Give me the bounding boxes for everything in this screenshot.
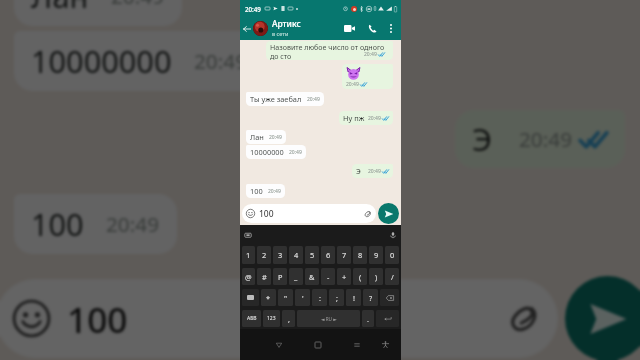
button[interactable]: " [278,289,293,306]
button[interactable]: Profile photo [253,21,268,36]
button[interactable]: Home [312,339,323,350]
staticText: 10000000 [250,147,284,157]
button[interactable]: Ты уже заебал [250,94,320,104]
button[interactable]: Back [240,22,253,35]
button[interactable] [380,289,399,306]
button[interactable]: 8 [353,246,367,264]
button[interactable]: : [312,289,327,306]
button[interactable]: ! [346,289,361,306]
button[interactable]: 10000000 [31,40,248,82]
button[interactable]: Лан [250,132,282,142]
staticText: 100 [250,186,263,196]
button[interactable]: 123 [263,310,280,327]
button[interactable]: ? [363,289,378,306]
button[interactable]: Send [378,203,399,224]
button[interactable]: 9 [369,246,383,264]
button[interactable]: ) [369,268,383,285]
button[interactable]: , [282,310,295,327]
staticText: 20:49 [289,149,302,156]
staticText: 1 [246,250,251,260]
staticText: / [391,272,394,282]
button[interactable]: Voice input [389,231,397,239]
button[interactable]: Clipboard [244,231,252,239]
staticText: Лан [250,132,264,142]
staticText: ! [353,293,355,303]
staticText: ' [302,293,304,303]
button[interactable]: Лан [31,0,165,17]
staticText: 20:49 [106,210,160,238]
staticText: 3 [278,250,283,260]
staticText: 20:49 [268,188,281,195]
staticText: ? [369,293,373,303]
staticText: 9 [374,250,379,260]
staticText: 20:49 [364,51,377,58]
button[interactable]: 20:49 [346,66,389,88]
button[interactable]: Voice call [364,20,380,36]
staticText: ) [375,272,378,282]
staticText: Э [356,166,361,176]
button[interactable]: # [257,268,271,285]
button[interactable]: 3 [273,246,287,264]
button[interactable]: Назовите любое число от одного [270,43,389,59]
staticText: - [327,272,330,282]
button[interactable]: ( [353,268,367,285]
staticText: , [288,314,290,324]
button[interactable]: 100 [246,204,372,223]
staticText: : [319,293,321,303]
button[interactable]: ' [295,289,310,306]
button[interactable]: Send [565,276,640,360]
staticText: 20:49 [368,115,381,122]
button[interactable]: @ [242,268,255,285]
button[interactable]: _ [289,268,303,285]
button[interactable]: Accessibility [380,339,391,350]
staticText: 6 [326,250,331,260]
staticText: в сети [272,30,289,38]
button[interactable]: 6 [321,246,335,264]
button[interactable] [242,289,259,306]
staticText: ; [336,293,338,303]
button[interactable]: ◄ RU ► [297,310,360,327]
staticText: 123 [267,315,276,322]
button[interactable]: 2 [257,246,271,264]
staticText: 4 [294,250,299,260]
button[interactable]: 100 [250,186,281,196]
staticText: 100 [31,203,84,245]
staticText: " [284,293,288,303]
button[interactable]: Э [472,118,608,160]
staticText: 20:49 [269,134,282,141]
button[interactable]: Recents [351,339,362,350]
button[interactable]: ; [329,289,344,306]
button[interactable]: * [261,289,276,306]
staticText: Лан [31,0,89,17]
button[interactable]: / [385,268,399,285]
staticText: до сто [270,51,292,60]
staticText: 8 [358,250,363,260]
button[interactable]: Back [273,339,284,350]
button[interactable]: Ну пж [343,113,389,123]
staticText: Артикс [272,18,301,29]
button[interactable]: Э [356,166,389,176]
button[interactable]: 1 [242,246,255,264]
button[interactable]: 7 [337,246,351,264]
button[interactable]: & [305,268,319,285]
staticText: . [367,314,369,324]
staticText: Э [472,118,492,160]
button[interactable]: + [337,268,351,285]
button[interactable] [376,310,399,327]
button[interactable]: - [321,268,335,285]
button[interactable]: 100 [31,203,160,245]
button[interactable]: 4 [289,246,303,264]
button[interactable]: 0 [385,246,399,264]
button[interactable]: . [362,310,374,327]
button[interactable]: Video call [341,20,357,36]
staticText: # [262,272,267,282]
staticText: 7 [342,250,347,260]
staticText: 20:49 [194,47,248,75]
button[interactable]: 10000000 [250,147,302,157]
button[interactable]: AБВ [242,310,261,327]
button[interactable]: 5 [305,246,319,264]
staticText: 0 [390,250,395,260]
button[interactable]: 100 [13,279,541,358]
button[interactable]: More options [384,22,397,35]
button[interactable]: P [273,268,287,285]
